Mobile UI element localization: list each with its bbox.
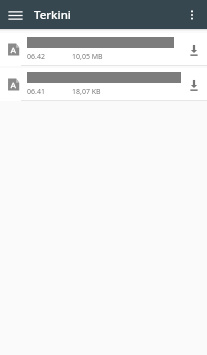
button[interactable]: Download xyxy=(181,33,207,66)
button[interactable]: 06.41 xyxy=(0,68,207,101)
button[interactable]: More options xyxy=(181,4,203,26)
button[interactable]: Open navigation drawer xyxy=(4,4,26,26)
staticText: 06.42 xyxy=(27,52,45,62)
button[interactable]: 06.42 xyxy=(0,33,207,66)
staticText: Terkini xyxy=(34,7,71,23)
staticText: 18,07 KB xyxy=(72,87,101,97)
staticText: 06.41 xyxy=(27,87,45,97)
staticText: 10,05 MB xyxy=(72,52,103,62)
button[interactable]: Download xyxy=(181,68,207,101)
